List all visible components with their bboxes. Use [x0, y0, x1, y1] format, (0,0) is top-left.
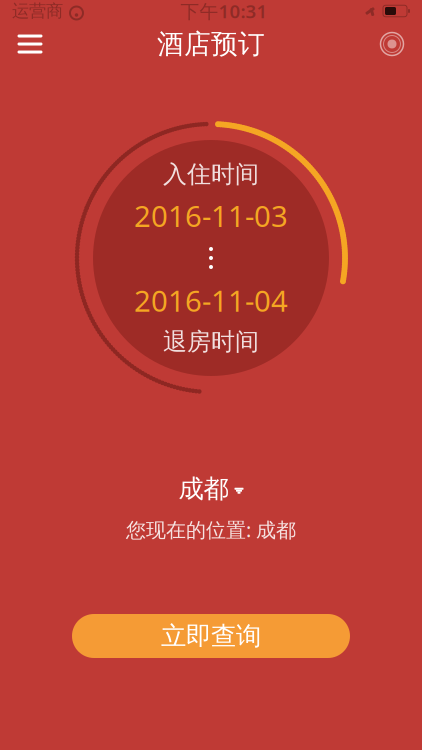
staticText: 下午10:31 — [180, 0, 267, 23]
staticText: 您现在的位置: 成都 — [126, 516, 296, 543]
staticText: 入住时间 — [163, 160, 259, 189]
staticText: 退房时间 — [163, 327, 259, 356]
staticText: 酒店预订 — [157, 28, 265, 60]
staticText: 2016-11-03 — [134, 196, 288, 235]
button[interactable]: 立即查询 — [72, 614, 350, 658]
button[interactable]: Profile — [368, 22, 416, 66]
button[interactable]: 成都 — [168, 469, 253, 508]
staticText: 立即查询 — [161, 620, 261, 651]
staticText: 运营商 — [12, 0, 63, 22]
staticText: 成都 — [178, 473, 228, 504]
staticText: 2016-11-04 — [134, 281, 288, 320]
button[interactable]: Menu — [6, 22, 54, 66]
